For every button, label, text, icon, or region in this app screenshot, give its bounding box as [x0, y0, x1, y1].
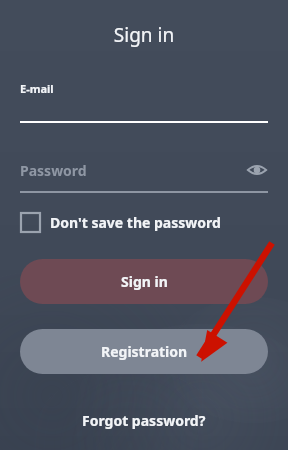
button[interactable]: Don't save the password: [20, 212, 221, 233]
staticText: E-mail: [20, 81, 54, 96]
staticText: Registration: [101, 342, 188, 361]
button[interactable]: Registration: [20, 329, 268, 374]
staticText: Sign in: [0, 22, 288, 48]
staticText: Forgot password?: [82, 411, 206, 430]
button[interactable]: Forgot password?: [0, 411, 288, 430]
staticText: Sign in: [121, 272, 168, 291]
staticText: Don't save the password: [50, 213, 221, 232]
button[interactable]: Show password: [246, 159, 268, 181]
staticText: Password: [20, 161, 246, 180]
button[interactable]: Sign in: [20, 259, 268, 304]
